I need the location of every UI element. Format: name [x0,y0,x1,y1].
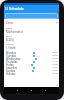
button[interactable]: Sunday [6,69,58,72]
button[interactable]: Tuesday [6,54,58,57]
staticText: Schedule [9,6,24,11]
button[interactable]: Teacher [6,43,59,50]
button[interactable]: Holiday [6,72,58,75]
staticText: 16:00 [52,69,58,72]
button[interactable] [5,13,58,19]
staticText: 08:00 [52,51,58,54]
staticText: Name [6,27,13,30]
button[interactable]: Room [6,35,59,42]
staticText: Mathematics [6,30,24,34]
staticText: Holiday [6,72,16,75]
staticText: 13:00 [52,63,58,66]
staticText: Sunday [6,69,16,72]
button[interactable]: Thursday [6,60,58,63]
button[interactable]: Menu [4,6,9,11]
button[interactable]: Friday [6,63,58,66]
staticText: Room [6,35,13,38]
staticText: Wednesday [6,57,21,60]
button[interactable]: Saturday [6,66,58,69]
button[interactable]: Wednesday [6,57,58,60]
staticText: 11:15 [52,60,58,63]
staticText: Error [6,21,14,25]
staticText: 09:30 [52,54,58,57]
staticText: Saturday [6,66,18,69]
staticText: 18:45 [52,72,58,75]
staticText: 10:00 [52,57,58,60]
button[interactable]: Error [6,19,58,26]
staticText: Teacher [6,43,15,46]
staticText: Friday [6,63,14,66]
staticText: Thursday [6,60,18,63]
staticText: 14:30 [52,66,58,69]
button[interactable]: Monday [6,51,58,54]
button[interactable]: Name [6,27,59,34]
staticText: J. Smith [6,46,16,50]
staticText: B-204 [6,38,14,42]
staticText: Tuesday [6,54,17,57]
staticText: Monday [6,51,17,54]
